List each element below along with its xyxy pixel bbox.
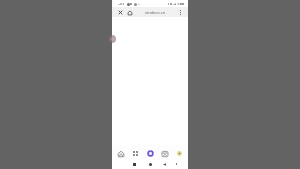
button[interactable]: Home bbox=[145, 159, 155, 169]
button[interactable]: Apps bbox=[129, 147, 142, 160]
button[interactable]: Close bbox=[116, 8, 125, 17]
button[interactable]: Wallet bbox=[158, 147, 171, 160]
button[interactable]: Recents bbox=[129, 159, 139, 169]
button[interactable]: Back bbox=[159, 159, 169, 169]
button[interactable]: Menu bbox=[171, 159, 181, 169]
staticText: xindeco.cn bbox=[145, 10, 166, 15]
button[interactable]: More options bbox=[176, 8, 185, 17]
button[interactable]: Home bbox=[114, 147, 127, 160]
button[interactable]: Profile bbox=[173, 147, 186, 160]
button[interactable]: Assistant bbox=[144, 147, 157, 160]
button[interactable]: Home bbox=[125, 8, 134, 17]
